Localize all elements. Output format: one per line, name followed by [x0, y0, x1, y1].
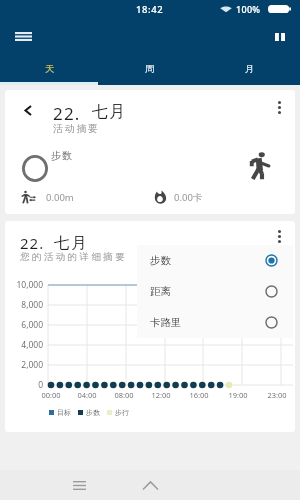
staticText: 卡路里 [150, 316, 182, 329]
button[interactable]: Recent apps [65, 471, 93, 499]
staticText: 目标 [57, 408, 71, 417]
button[interactable]: 距离 [137, 276, 293, 307]
staticText: 08:00 [110, 390, 138, 400]
button[interactable]: Back [18, 100, 38, 120]
button[interactable]: 周 [100, 50, 200, 85]
staticText: 距离 [150, 285, 171, 298]
button[interactable]: 天 [0, 50, 100, 85]
staticText: 0.00m [46, 191, 74, 204]
staticText: 天 [45, 63, 55, 75]
staticText: 0 [5, 379, 43, 391]
staticText: 步数 [86, 408, 100, 417]
staticText: 您的活动的详细摘要 [20, 251, 128, 263]
staticText: 6,000 [5, 319, 43, 331]
staticText: 月 [245, 63, 255, 75]
button[interactable]: 步数 [137, 245, 293, 276]
staticText: 0.00卡 [174, 191, 203, 204]
staticText: 步数 [51, 149, 74, 162]
staticText: 22. [20, 233, 45, 253]
staticText: 七月 [54, 233, 89, 253]
staticText: 18:42 [136, 3, 164, 16]
staticText: 七月 [92, 102, 127, 122]
button[interactable]: Pause [265, 22, 294, 51]
staticText: 2,000 [5, 359, 43, 371]
staticText: 23:00 [263, 390, 291, 400]
staticText: 步行 [115, 408, 129, 417]
button[interactable]: 卡路里 [137, 307, 293, 338]
staticText: 19:00 [224, 390, 252, 400]
staticText: 周 [145, 63, 155, 75]
staticText: 22. [53, 102, 81, 125]
button[interactable]: More options [267, 95, 291, 119]
button[interactable]: More options [267, 224, 291, 248]
button[interactable]: Navigation menu [9, 22, 38, 51]
staticText: 12:00 [147, 390, 175, 400]
staticText: 8,000 [5, 299, 43, 311]
staticText: 16:00 [185, 390, 213, 400]
staticText: 100% [236, 3, 261, 15]
staticText: 4,000 [5, 339, 43, 351]
staticText: 10,000 [5, 279, 43, 291]
staticText: 00:00 [37, 390, 65, 400]
button[interactable]: Home [136, 471, 164, 499]
staticText: 步数 [150, 254, 171, 267]
staticText: 活动摘要 [53, 122, 100, 135]
button[interactable]: 月 [200, 50, 300, 85]
staticText: 04:00 [73, 390, 101, 400]
